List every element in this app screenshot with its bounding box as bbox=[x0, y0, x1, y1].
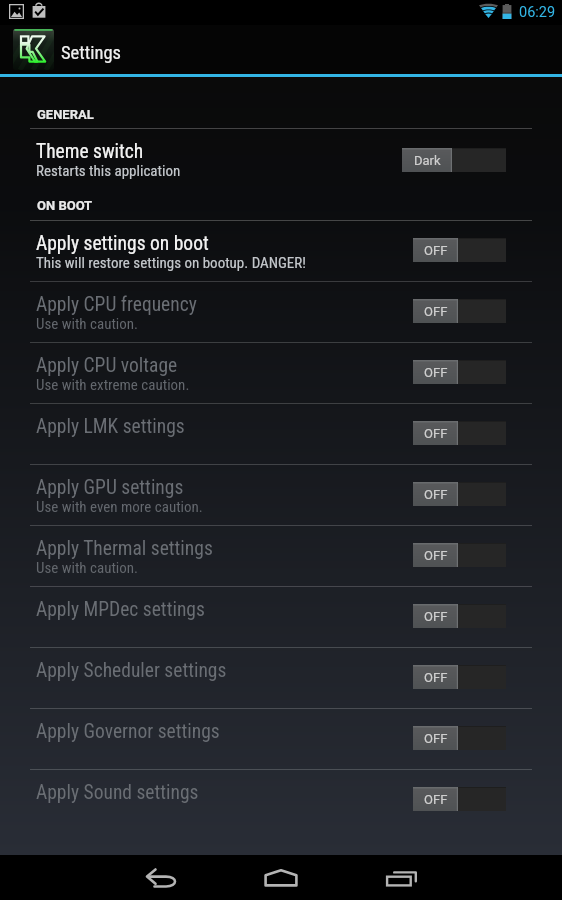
button[interactable]: Dark bbox=[402, 148, 506, 172]
button[interactable]: OFF bbox=[413, 360, 506, 384]
staticText: Apply CPU voltage bbox=[36, 354, 178, 377]
staticText: OFF bbox=[424, 243, 448, 258]
staticText: Restarts this application bbox=[36, 162, 181, 180]
button[interactable]: Apply CPU voltage bbox=[0, 341, 562, 402]
staticText: 06:29 bbox=[519, 4, 556, 21]
staticText: OFF bbox=[424, 731, 448, 746]
staticText: Apply settings on boot bbox=[36, 232, 209, 255]
button[interactable]: Settings bbox=[0, 25, 562, 75]
staticText: ON BOOT bbox=[37, 198, 93, 213]
staticText: OFF bbox=[424, 670, 448, 685]
button[interactable]: Apply MPDec settings bbox=[0, 585, 562, 646]
staticText: This will restore settings on bootup. DA… bbox=[36, 254, 306, 272]
button[interactable]: OFF bbox=[413, 299, 506, 323]
staticText: Use with even more caution. bbox=[36, 498, 203, 516]
staticText: OFF bbox=[424, 548, 448, 563]
button[interactable]: OFF bbox=[413, 482, 506, 506]
button[interactable]: Theme switch bbox=[0, 127, 562, 193]
button[interactable]: OFF bbox=[413, 604, 506, 628]
staticText: Dark bbox=[414, 153, 441, 168]
button[interactable]: Apply Thermal settings bbox=[0, 524, 562, 585]
staticText: Settings bbox=[61, 42, 121, 64]
staticText: OFF bbox=[424, 426, 448, 441]
staticText: GENERAL bbox=[37, 107, 94, 122]
button[interactable]: Apply Scheduler settings bbox=[0, 646, 562, 707]
staticText: Use with caution. bbox=[36, 559, 139, 577]
staticText: OFF bbox=[424, 304, 448, 319]
staticText: Apply MPDec settings bbox=[36, 598, 205, 621]
staticText: Apply Governor settings bbox=[36, 720, 220, 743]
staticText: Theme switch bbox=[36, 140, 144, 163]
staticText: Use with extreme caution. bbox=[36, 376, 190, 394]
staticText: Apply LMK settings bbox=[36, 415, 185, 438]
staticText: Apply Sound settings bbox=[36, 781, 199, 804]
button[interactable]: OFF bbox=[413, 421, 506, 445]
staticText: OFF bbox=[424, 792, 448, 807]
button[interactable]: Apply GPU settings bbox=[0, 463, 562, 524]
staticText: Apply CPU frequency bbox=[36, 293, 197, 316]
staticText: OFF bbox=[424, 365, 448, 380]
staticText: Apply Thermal settings bbox=[36, 537, 213, 560]
staticText: Apply Scheduler settings bbox=[36, 659, 227, 682]
button[interactable]: Recent apps bbox=[377, 862, 425, 900]
button[interactable]: Apply CPU frequency bbox=[0, 280, 562, 341]
button[interactable]: OFF bbox=[413, 787, 506, 811]
button[interactable]: Apply Governor settings bbox=[0, 707, 562, 768]
staticText: OFF bbox=[424, 487, 448, 502]
staticText: Use with caution. bbox=[36, 315, 139, 333]
button[interactable]: OFF bbox=[413, 543, 506, 567]
button[interactable]: OFF bbox=[413, 665, 506, 689]
button[interactable]: Apply settings on boot bbox=[0, 219, 562, 280]
staticText: OFF bbox=[424, 609, 448, 624]
button[interactable]: OFF bbox=[413, 238, 506, 262]
button[interactable]: Home bbox=[257, 862, 305, 900]
button[interactable]: OFF bbox=[413, 726, 506, 750]
button[interactable]: Apply Sound settings bbox=[0, 768, 562, 829]
button[interactable]: Apply LMK settings bbox=[0, 402, 562, 463]
staticText: Apply GPU settings bbox=[36, 476, 184, 499]
button[interactable]: Back bbox=[137, 862, 185, 900]
